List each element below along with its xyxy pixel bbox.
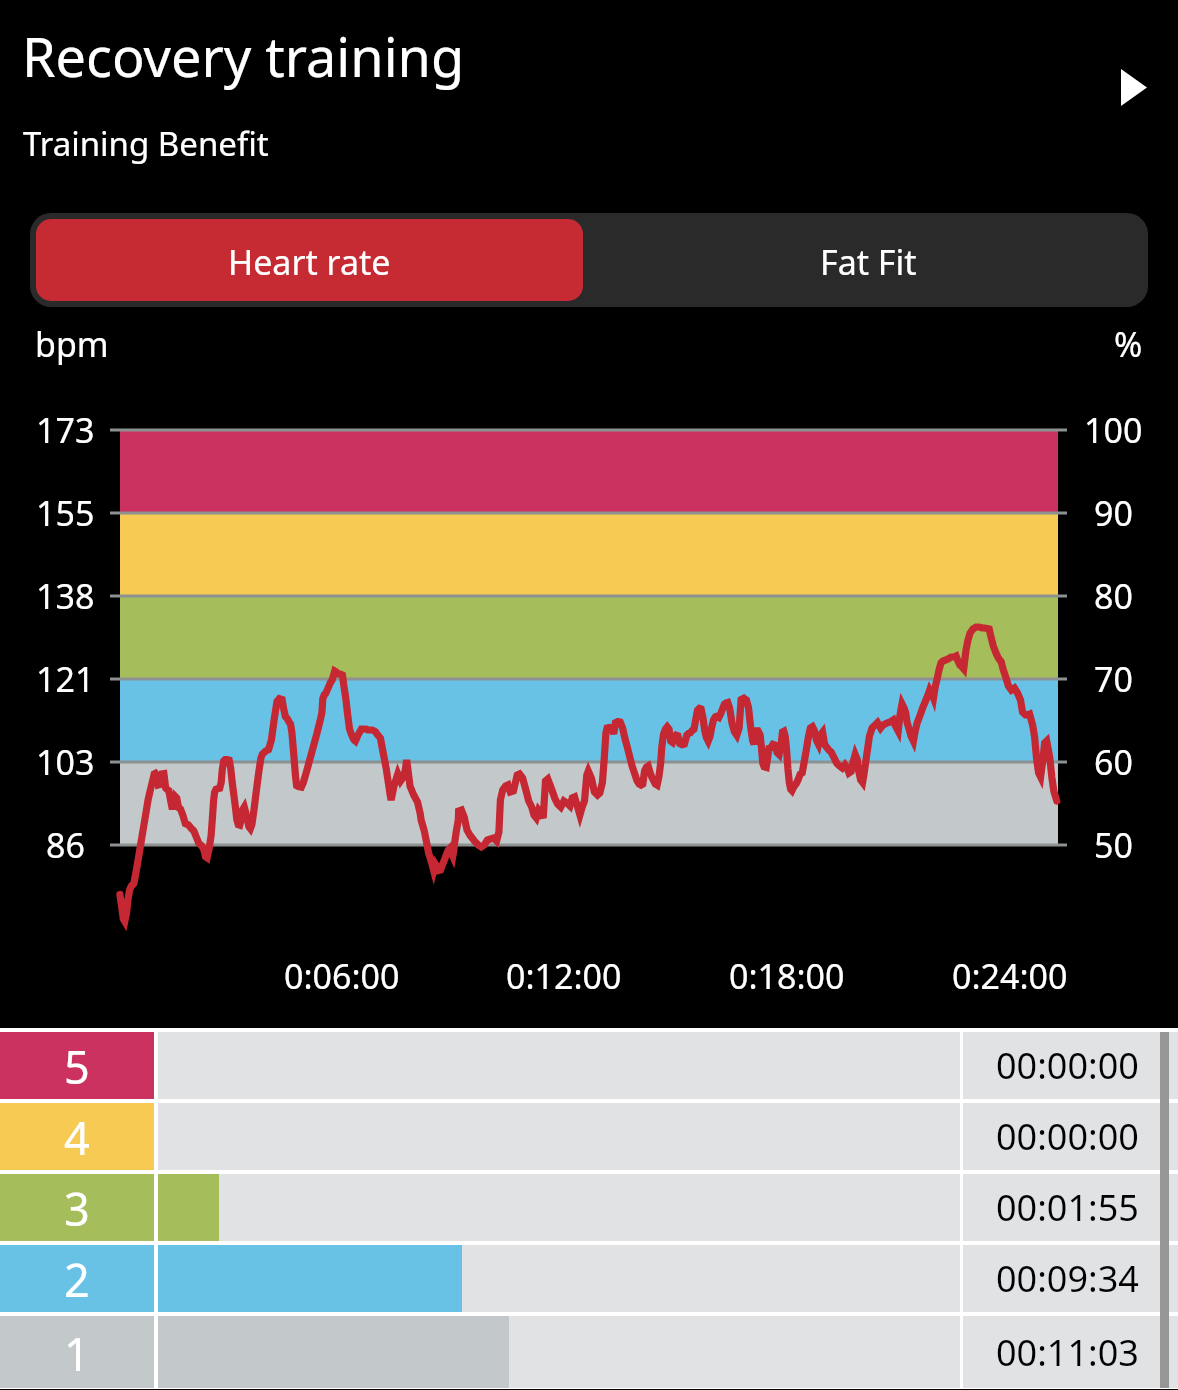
staticText: 103 (36, 739, 95, 785)
button[interactable]: 5 (0, 1032, 1178, 1099)
staticText: Heart rate (228, 239, 391, 285)
staticText: 100 (1084, 407, 1143, 453)
staticText: 155 (36, 490, 95, 536)
staticText: 3 (64, 1178, 90, 1239)
staticText: 50 (1094, 822, 1133, 868)
staticText: 121 (36, 656, 95, 702)
staticText: 138 (36, 573, 95, 619)
staticText: 173 (36, 407, 95, 453)
staticText: 0:24:00 (952, 953, 1068, 999)
button[interactable]: Fat Fit (589, 213, 1148, 307)
staticText: % (1114, 321, 1143, 367)
staticText: 90 (1094, 490, 1133, 536)
staticText: 00:09:34 (996, 1254, 1139, 1303)
staticText: 60 (1094, 739, 1133, 785)
staticText: Fat Fit (820, 239, 917, 285)
staticText: 00:01:55 (996, 1183, 1139, 1232)
button[interactable]: 4 (0, 1103, 1178, 1170)
button[interactable]: 2 (0, 1245, 1178, 1312)
staticText: 00:00:00 (996, 1112, 1139, 1161)
staticText: bpm (35, 321, 109, 367)
staticText: Training Benefit (23, 121, 269, 166)
staticText: 4 (64, 1107, 90, 1168)
staticText: 0:12:00 (506, 953, 622, 999)
staticText: 86 (46, 822, 85, 868)
staticText: 00:11:03 (996, 1328, 1139, 1377)
staticText: 70 (1094, 656, 1133, 702)
button[interactable]: 3 (0, 1174, 1178, 1241)
staticText: 00:00:00 (996, 1041, 1139, 1090)
staticText: 2 (64, 1249, 90, 1310)
button[interactable]: Heart rate (36, 219, 583, 301)
staticText: 1 (64, 1323, 90, 1384)
staticText: 80 (1094, 573, 1133, 619)
button[interactable]: 1 (0, 1316, 1178, 1388)
staticText: 0:18:00 (729, 953, 845, 999)
staticText: 5 (64, 1036, 90, 1097)
staticText: 0:06:00 (284, 953, 400, 999)
staticText: Recovery training (22, 19, 465, 93)
button[interactable]: Play (1097, 50, 1171, 124)
